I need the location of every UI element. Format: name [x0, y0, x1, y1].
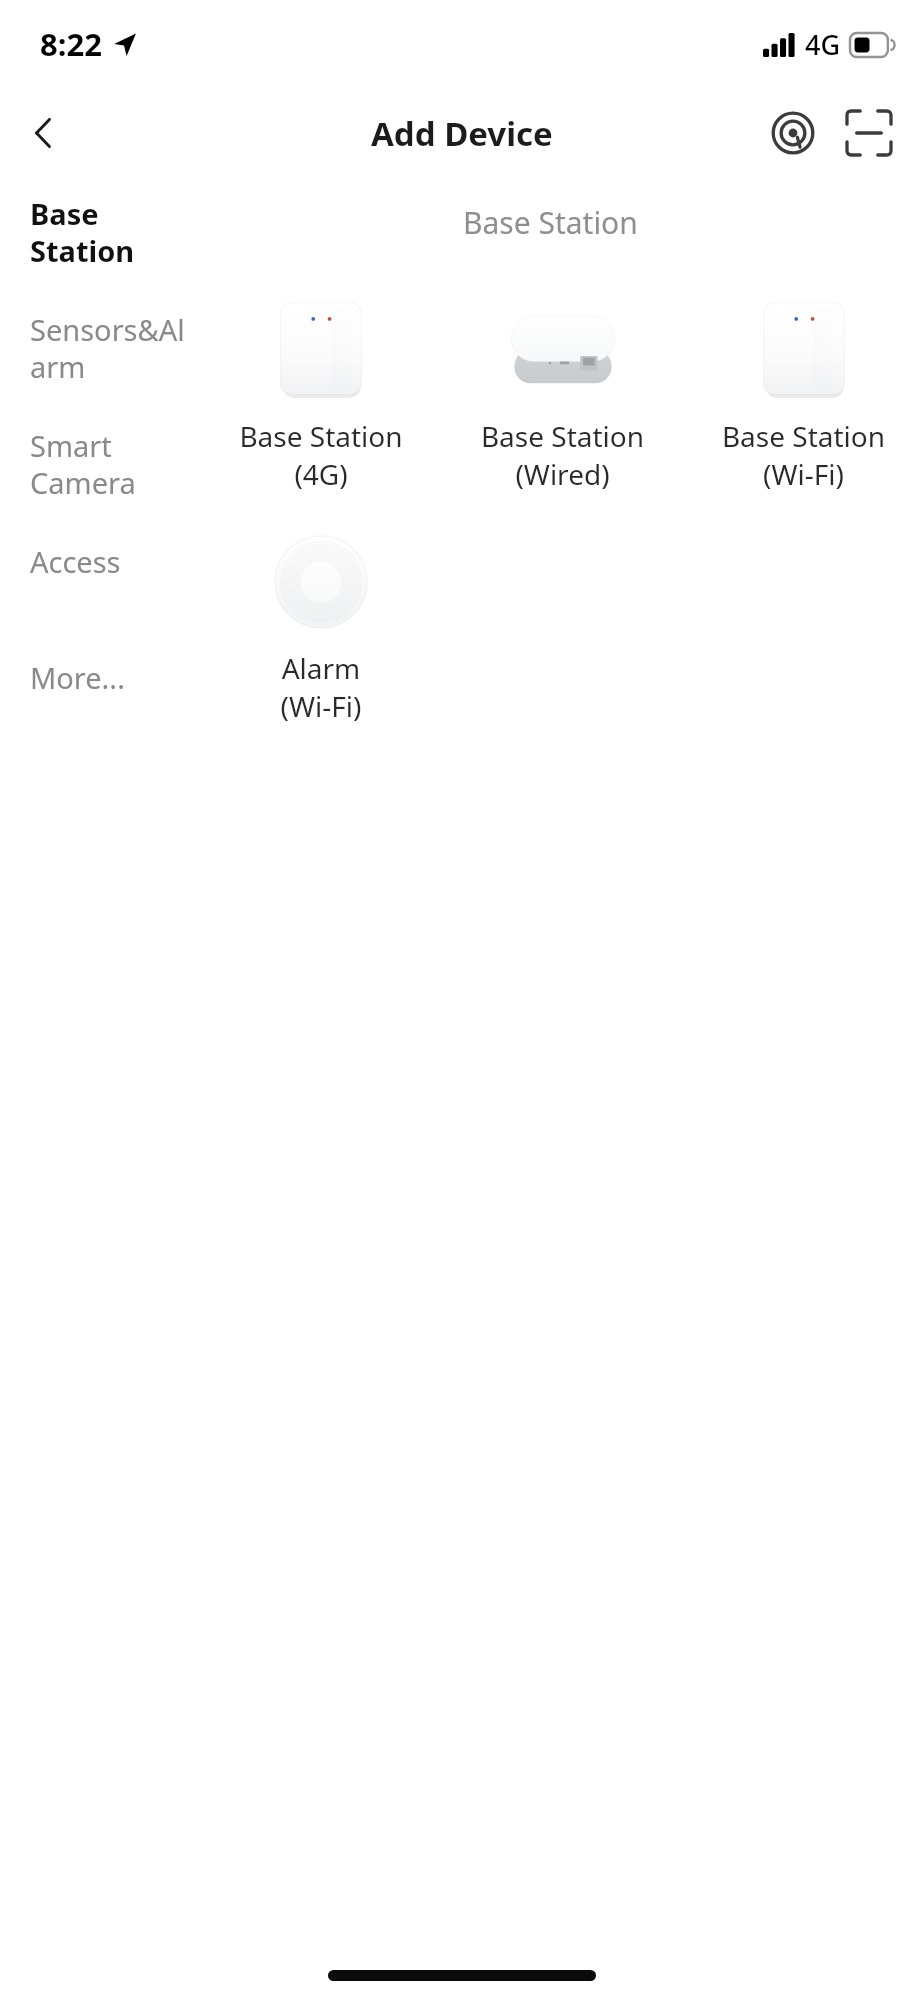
button[interactable]: More... — [0, 654, 200, 762]
button[interactable]: Alarm (Wi-Fi) — [200, 527, 442, 727]
button[interactable]: Smart Camera — [0, 422, 200, 530]
staticText: 4G — [805, 26, 841, 63]
button[interactable]: Base Station (Wi-Fi) — [683, 295, 924, 495]
staticText: 8:22 — [40, 23, 102, 65]
staticText: Sensors&Al arm — [30, 310, 185, 387]
staticText: Smart Camera — [30, 426, 136, 503]
button[interactable]: Base Station — [0, 190, 200, 298]
staticText: Base Station (Wi-Fi) — [687, 417, 920, 493]
button[interactable]: Back — [12, 101, 76, 165]
button[interactable]: Base Station (Wired) — [442, 295, 683, 495]
staticText: Base Station — [30, 194, 135, 271]
staticText: Access — [30, 542, 121, 581]
button[interactable]: Base Station (4G) — [200, 295, 442, 495]
staticText: Alarm (Wi-Fi) — [204, 649, 438, 725]
button[interactable]: Scan QR code — [838, 102, 900, 164]
button[interactable]: Access — [0, 538, 200, 646]
staticText: Base Station (Wired) — [446, 417, 679, 493]
staticText: Base Station (4G) — [204, 417, 438, 493]
button[interactable]: Sensors&Al arm — [0, 306, 200, 414]
staticText: Add Device — [371, 111, 553, 156]
button[interactable]: Nearby devices — [762, 102, 824, 164]
staticText: More... — [30, 658, 125, 697]
staticText: Base Station — [463, 202, 638, 243]
